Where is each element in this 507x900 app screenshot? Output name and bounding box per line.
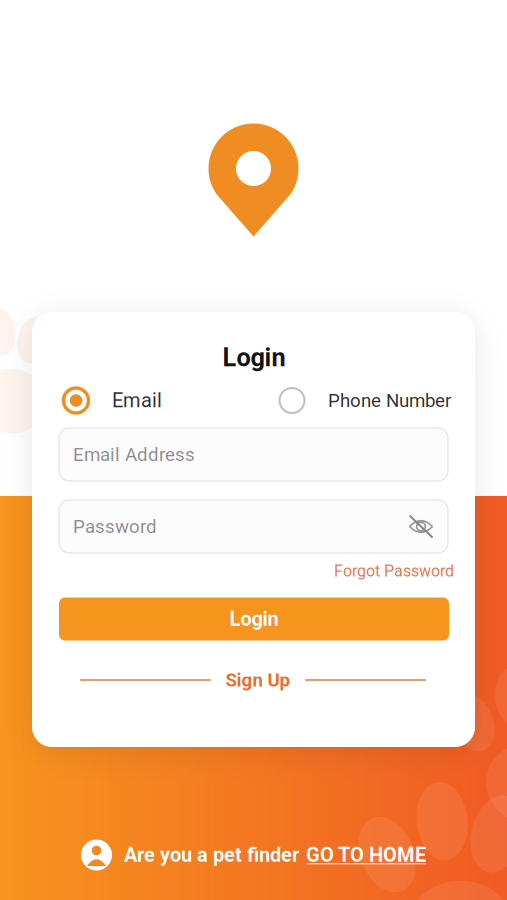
button[interactable]: Email [62,383,182,417]
button[interactable]: Login [59,597,449,640]
staticText: Email Address [73,444,195,465]
staticText: Password [73,516,157,537]
staticText: Email [112,389,162,412]
button[interactable]: Forgot Password [330,560,458,582]
staticText: GO TO HOME [306,843,426,867]
staticText: Sign Up [225,669,290,691]
staticText: Phone Number [328,390,451,411]
staticText: Login [229,607,278,631]
button[interactable]: Show password [403,504,439,548]
staticText: Are you a pet finder [124,843,299,867]
staticText: Login [222,343,285,372]
button[interactable]: Sign Up [211,667,305,693]
staticText: Forgot Password [334,562,454,580]
button[interactable]: Are you a pet finder [81,835,426,875]
button[interactable]: Phone Number [278,383,468,417]
